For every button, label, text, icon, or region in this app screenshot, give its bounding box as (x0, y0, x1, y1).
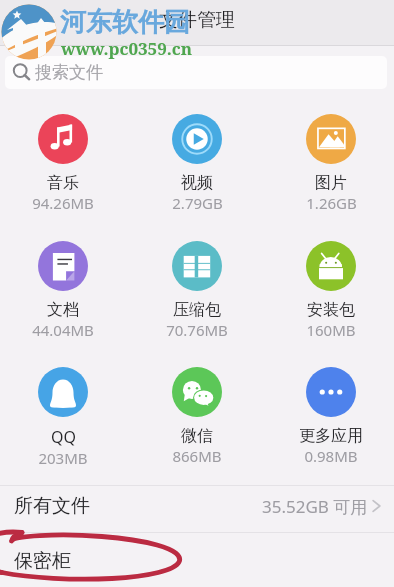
staticText: 866MB (172, 446, 222, 466)
staticText: 图片 (315, 173, 347, 193)
staticText: 河东软件园 (60, 6, 190, 39)
button[interactable]: 更多应用 (267, 359, 394, 469)
button[interactable]: 音乐 (0, 106, 127, 216)
button[interactable]: 文档 (0, 233, 127, 343)
staticText: 文档 (47, 300, 79, 320)
staticText: 70.76MB (166, 320, 228, 340)
staticText: 视频 (181, 173, 213, 193)
button[interactable]: 所有文件 (0, 483, 394, 529)
staticText: 更多应用 (299, 426, 363, 446)
button[interactable]: 安装包 (267, 233, 394, 343)
staticText: 1.26GB (306, 193, 357, 213)
staticText: 搜索文件 (35, 62, 103, 83)
staticText: 0.98MB (304, 446, 358, 466)
staticText: 203MB (38, 448, 88, 468)
button[interactable]: 保密柜 (0, 535, 394, 587)
staticText: QQ (51, 426, 76, 448)
staticText: 35.52GB 可用 (262, 495, 368, 518)
staticText: 安装包 (307, 300, 355, 320)
staticText: 160MB (306, 320, 356, 340)
button[interactable]: QQ (0, 359, 127, 469)
staticText: 44.04MB (32, 320, 94, 340)
staticText: 2.79GB (172, 193, 223, 213)
staticText: 文件管理 (159, 8, 235, 32)
staticText: 音乐 (47, 173, 79, 193)
button[interactable]: 微信 (133, 359, 261, 469)
button[interactable]: 搜索文件 (5, 56, 387, 89)
button[interactable]: 压缩包 (133, 233, 261, 343)
staticText: 微信 (181, 426, 213, 446)
staticText: 所有文件 (14, 494, 90, 518)
staticText: 保密柜 (14, 549, 71, 573)
staticText: 压缩包 (173, 300, 221, 320)
staticText: 94.26MB (32, 193, 94, 213)
button[interactable]: 图片 (267, 106, 394, 216)
button[interactable]: 视频 (133, 106, 261, 216)
staticText: www.pc0359.cn (61, 37, 193, 60)
